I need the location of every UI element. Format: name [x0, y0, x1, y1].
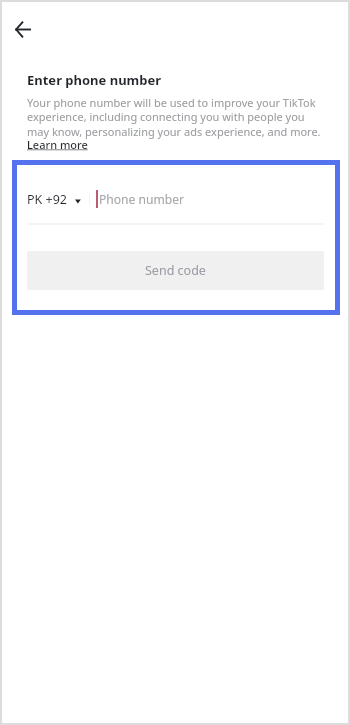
other: Select country code	[75, 194, 81, 205]
button[interactable]: Send code	[27, 251, 324, 290]
button[interactable]: Back	[7, 14, 37, 44]
staticText: PK +92	[27, 191, 68, 208]
button[interactable]: Learn more	[27, 137, 88, 152]
button[interactable]: PK +92	[27, 183, 81, 215]
staticText: Send code	[145, 262, 206, 279]
staticText: Your phone number will be used to improv…	[27, 95, 323, 140]
staticText: Phone number	[99, 191, 185, 207]
staticText: Enter phone number	[27, 71, 162, 89]
button[interactable]: Phone number	[90, 183, 319, 215]
